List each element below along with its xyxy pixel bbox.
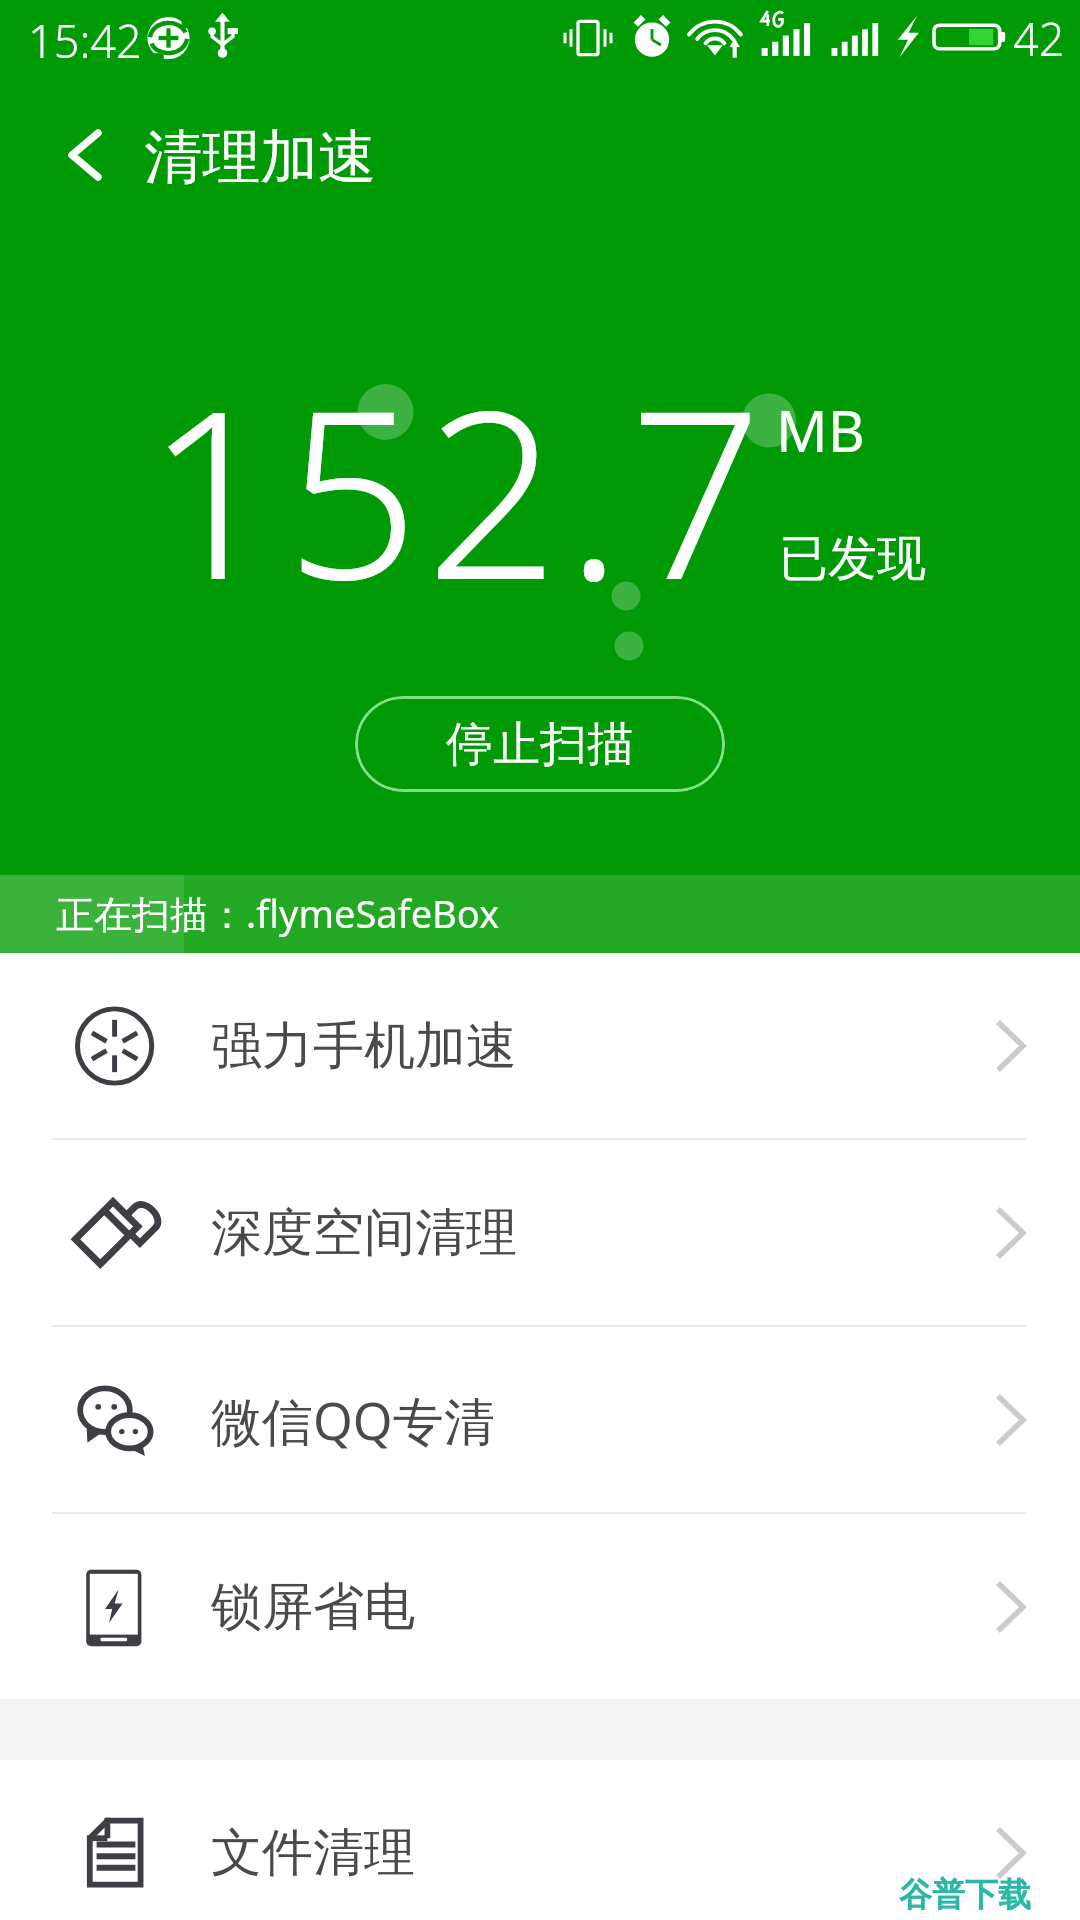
staticText: 深度空间清理 bbox=[211, 1201, 517, 1265]
staticText: 锁屏省电 bbox=[211, 1575, 415, 1639]
button[interactable]: 停止扫描 bbox=[355, 696, 725, 792]
staticText: 已发现 bbox=[779, 528, 926, 590]
staticText: 谷普下载 bbox=[899, 1874, 1031, 1916]
staticText: 停止扫描 bbox=[446, 715, 634, 774]
staticText: 152.7 bbox=[146, 330, 770, 647]
staticText: 15:42 bbox=[28, 10, 142, 71]
staticText: 文件清理 bbox=[211, 1821, 415, 1885]
button[interactable]: 深度空间清理 bbox=[0, 1140, 1080, 1325]
button[interactable]: 微信QQ专清 bbox=[0, 1327, 1080, 1512]
button[interactable]: Back bbox=[28, 101, 142, 209]
button[interactable]: 文件清理 bbox=[0, 1760, 1080, 1920]
staticText: 42 bbox=[1013, 8, 1065, 69]
button[interactable]: 锁屏省电 bbox=[0, 1514, 1080, 1699]
staticText: 清理加速 bbox=[144, 121, 376, 194]
staticText: 强力手机加速 bbox=[211, 1014, 517, 1078]
staticText: MB bbox=[776, 391, 865, 469]
button[interactable]: 强力手机加速 bbox=[0, 953, 1080, 1138]
staticText: 微信QQ专清 bbox=[211, 1385, 495, 1455]
staticText: 正在扫描：.flymeSafeBox bbox=[56, 887, 500, 939]
